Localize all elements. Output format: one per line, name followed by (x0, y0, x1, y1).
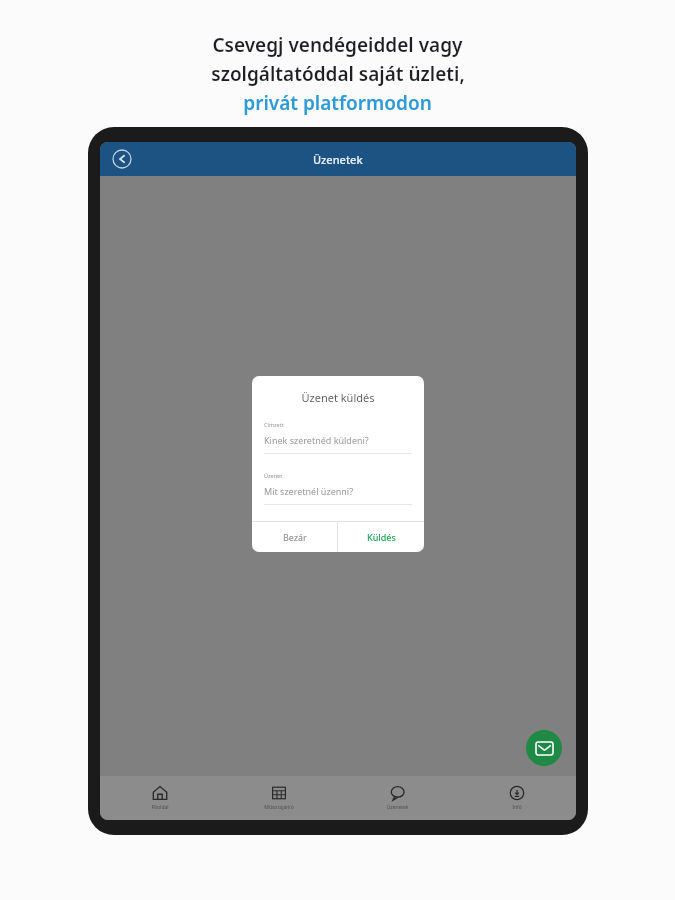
button[interactable]: Infó (457, 776, 576, 820)
staticText: Műsorajánló (264, 804, 294, 811)
button[interactable]: Műsorajánló (219, 776, 338, 820)
staticText: szolgáltatóddal saját üzleti, (211, 61, 465, 87)
button[interactable]: Főoldal (100, 776, 219, 820)
staticText: Küldés (367, 531, 396, 543)
button[interactable]: New message (526, 730, 562, 766)
button[interactable]: Back (107, 144, 137, 174)
staticText: Csevegj vendégeiddel vagy (212, 32, 463, 58)
staticText: Üzenetek (313, 152, 363, 167)
staticText: Bezár (283, 531, 307, 543)
staticText: Infó (512, 804, 522, 811)
staticText: Kinek szeretnéd küldeni? (264, 434, 369, 446)
staticText: Üzenet küldés (252, 390, 424, 405)
button[interactable]: Bezár (252, 522, 337, 552)
staticText: Címzett (264, 421, 284, 428)
button[interactable]: Küldés (338, 522, 424, 552)
staticText: Mit szeretnél üzenni? (264, 485, 354, 497)
staticText: privát platformodon (243, 90, 432, 116)
staticText: Főoldal (151, 804, 169, 811)
staticText: Üzenetek (386, 804, 409, 811)
button[interactable]: Üzenetek (338, 776, 457, 820)
staticText: Üzenet (264, 472, 283, 479)
